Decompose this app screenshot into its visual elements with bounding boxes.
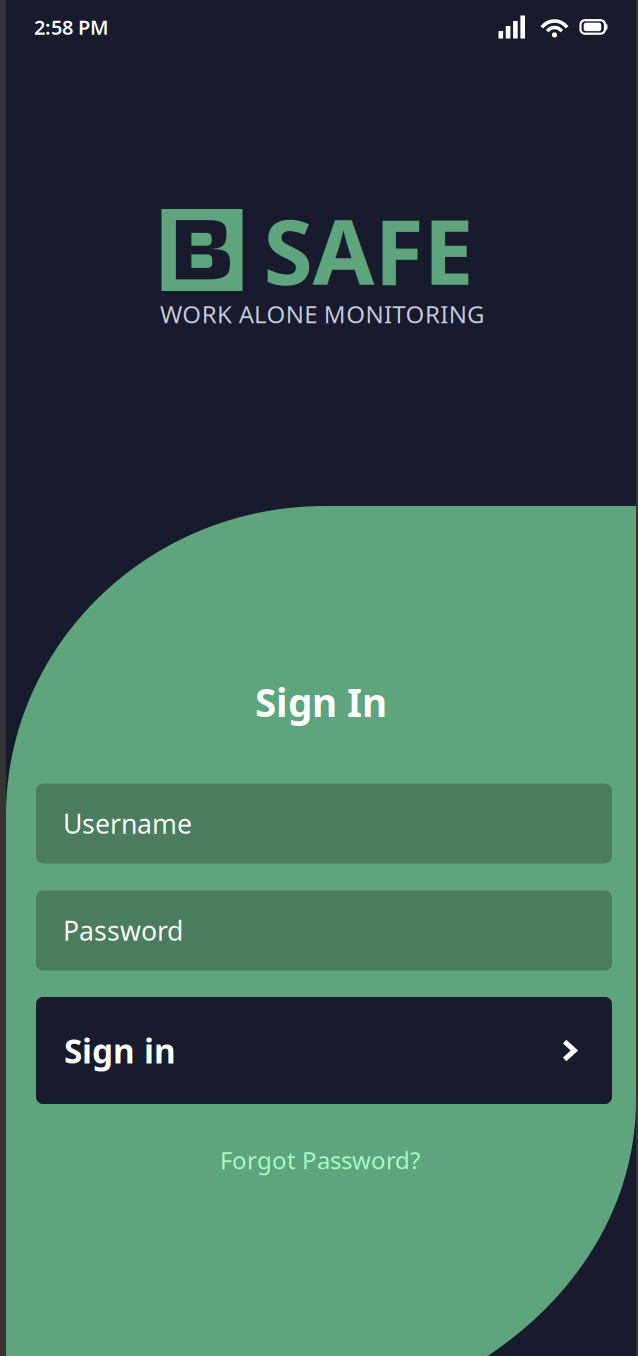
button[interactable]: Forgot Password? [170,1138,470,1182]
staticText: SAFE [263,191,473,309]
button[interactable]: Sign in [36,997,612,1104]
staticText: WORK ALONE MONITORING [160,298,484,330]
staticText: Password [63,913,183,948]
staticText: Sign In [255,676,387,728]
staticText: Forgot Password? [220,1144,420,1176]
staticText: Sign in [64,1028,176,1073]
staticText: Username [63,806,192,841]
staticText: 2:58 PM [34,14,109,40]
